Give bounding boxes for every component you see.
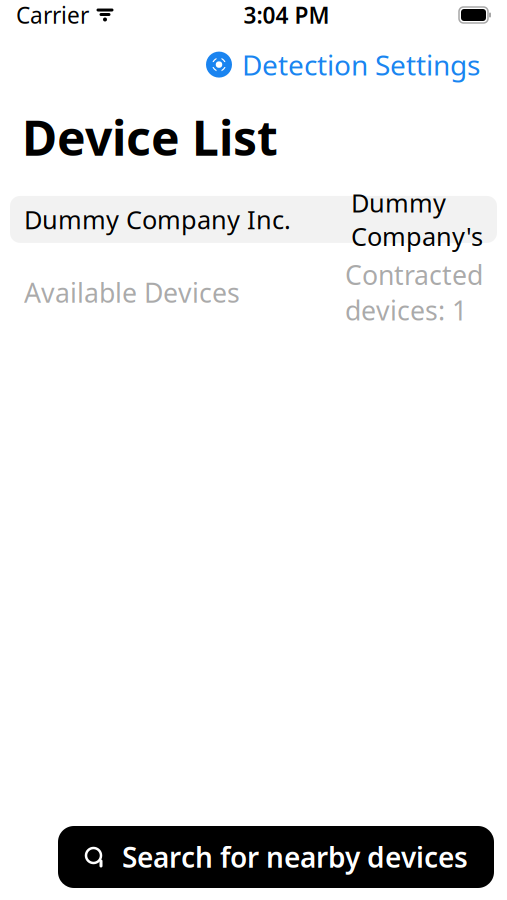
staticText: Carrier (16, 0, 89, 30)
staticText: Search for nearby devices (122, 838, 468, 876)
button[interactable]: Detection Settings (202, 40, 484, 89)
staticText: Available Devices (24, 275, 240, 310)
staticText: 3:04 PM (243, 0, 329, 30)
button[interactable]: Dummy Company Inc. (10, 196, 497, 243)
staticText: Dummy Company Inc. (24, 203, 291, 236)
staticText: Dummy Company's (351, 186, 483, 253)
button[interactable]: Search for nearby devices (58, 826, 494, 888)
staticText: Detection Settings (242, 46, 480, 83)
staticText: Contracted devices: 1 (345, 257, 483, 328)
staticText: Device List (22, 105, 278, 169)
